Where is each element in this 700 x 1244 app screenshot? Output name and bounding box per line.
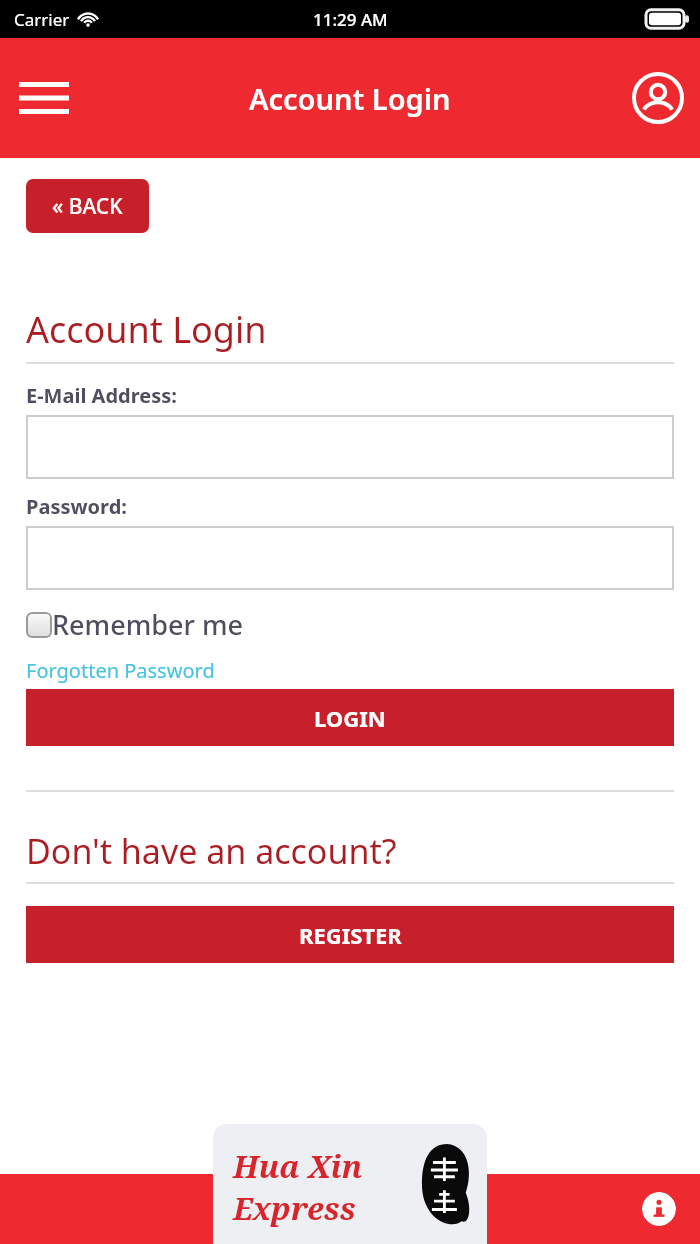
button[interactable]: Info [642,1192,676,1226]
staticText: REGISTER [299,920,402,950]
staticText: 11:29 AM [313,8,388,31]
button[interactable] [26,415,674,479]
staticText: Express [233,1187,356,1229]
staticText: Don't have an account? [26,828,397,874]
button[interactable]: LOGIN [26,689,674,746]
button[interactable]: REGISTER [26,906,674,963]
staticText: E-Mail Address: [26,382,177,409]
staticText: Hua Xin [233,1145,363,1187]
staticText: Remember me [52,606,243,643]
staticText: Password: [26,493,127,520]
staticText: « BACK [52,192,123,221]
button[interactable]: Account [628,68,688,128]
staticText: Account Login [249,79,451,118]
button[interactable]: « BACK [26,179,149,233]
staticText: LOGIN [314,703,386,733]
button[interactable]: Forgotten Password [26,657,215,684]
button[interactable]: Remember me [26,606,243,643]
button[interactable] [26,526,674,590]
button[interactable]: Hua Xin Express logo [213,1124,487,1244]
staticText: Carrier [14,8,70,31]
button[interactable]: Menu [12,66,76,130]
staticText: Account Login [26,305,267,354]
